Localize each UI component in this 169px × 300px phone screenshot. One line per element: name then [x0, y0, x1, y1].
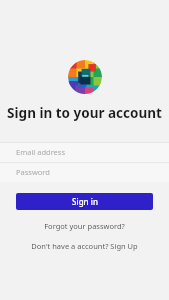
staticText: Sign in to your account — [7, 104, 162, 122]
staticText: Sign in — [72, 196, 98, 207]
other: App logo — [68, 60, 102, 94]
button[interactable]: Forgot your password? — [0, 219, 169, 233]
staticText: Password — [16, 167, 50, 177]
button[interactable]: Password — [0, 162, 169, 182]
button[interactable]: Email address — [0, 142, 169, 162]
staticText: Email address — [16, 147, 66, 157]
button[interactable]: Sign in — [16, 193, 153, 210]
staticText: Don't have a account? Sign Up — [31, 241, 138, 251]
staticText: Forgot your password? — [44, 221, 125, 231]
button[interactable]: Don't have a account? Sign Up — [0, 239, 169, 253]
